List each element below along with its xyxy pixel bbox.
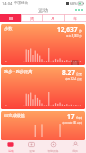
staticText: 已完成锻炼 [4, 113, 25, 118]
staticText: 14:04 [2, 1, 13, 6]
staticText: 步 [79, 29, 82, 33]
button[interactable]: 运动 [0, 140, 21, 153]
staticText: 今日目标 30 分钟 [62, 121, 82, 125]
staticText: 日 [9, 16, 13, 21]
button[interactable]: 周 [21, 14, 42, 22]
button[interactable]: 智能设备 [42, 140, 64, 153]
other: 运动 [7, 141, 14, 148]
button[interactable]: More options [74, 8, 84, 12]
staticText: 运动 [8, 149, 14, 153]
button[interactable]: 日 [0, 14, 21, 22]
button[interactable]: 年 [64, 14, 86, 22]
staticText: 年 [73, 16, 77, 21]
staticText: 分钟 [76, 116, 82, 120]
button[interactable]: 步数 [1, 24, 85, 65]
staticText: 公里 [76, 72, 82, 76]
staticText: 我的 [72, 149, 78, 153]
staticText: 步数 [4, 26, 13, 31]
staticText: 目标 8,000 步 [66, 34, 82, 38]
staticText: 跑步 · 跑步距离 [4, 69, 33, 75]
staticText: 本周 32.4 公里 [65, 77, 82, 81]
button[interactable]: 已完成锻炼 [1, 111, 85, 140]
button[interactable]: 月 [42, 14, 64, 22]
staticText: 智能设备 [47, 149, 59, 153]
staticText: 周 [30, 16, 34, 21]
staticText: 12,637 [57, 25, 78, 34]
other: 智能设备 [50, 141, 57, 148]
staticText: 68% [70, 1, 77, 6]
staticText: 运动 [38, 7, 48, 13]
button[interactable]: 跑步 · 跑步距离 [1, 67, 85, 109]
staticText: 17 [67, 112, 75, 121]
other: 我的 [72, 141, 79, 148]
staticText: 发现 [29, 149, 35, 153]
button[interactable]: 发现 [21, 140, 42, 153]
other: 发现 [28, 141, 35, 148]
staticText: 中国移动 [14, 1, 28, 5]
staticText: 8.27 [62, 68, 75, 77]
button[interactable]: 我的 [64, 140, 86, 153]
staticText: 月 [51, 16, 55, 21]
